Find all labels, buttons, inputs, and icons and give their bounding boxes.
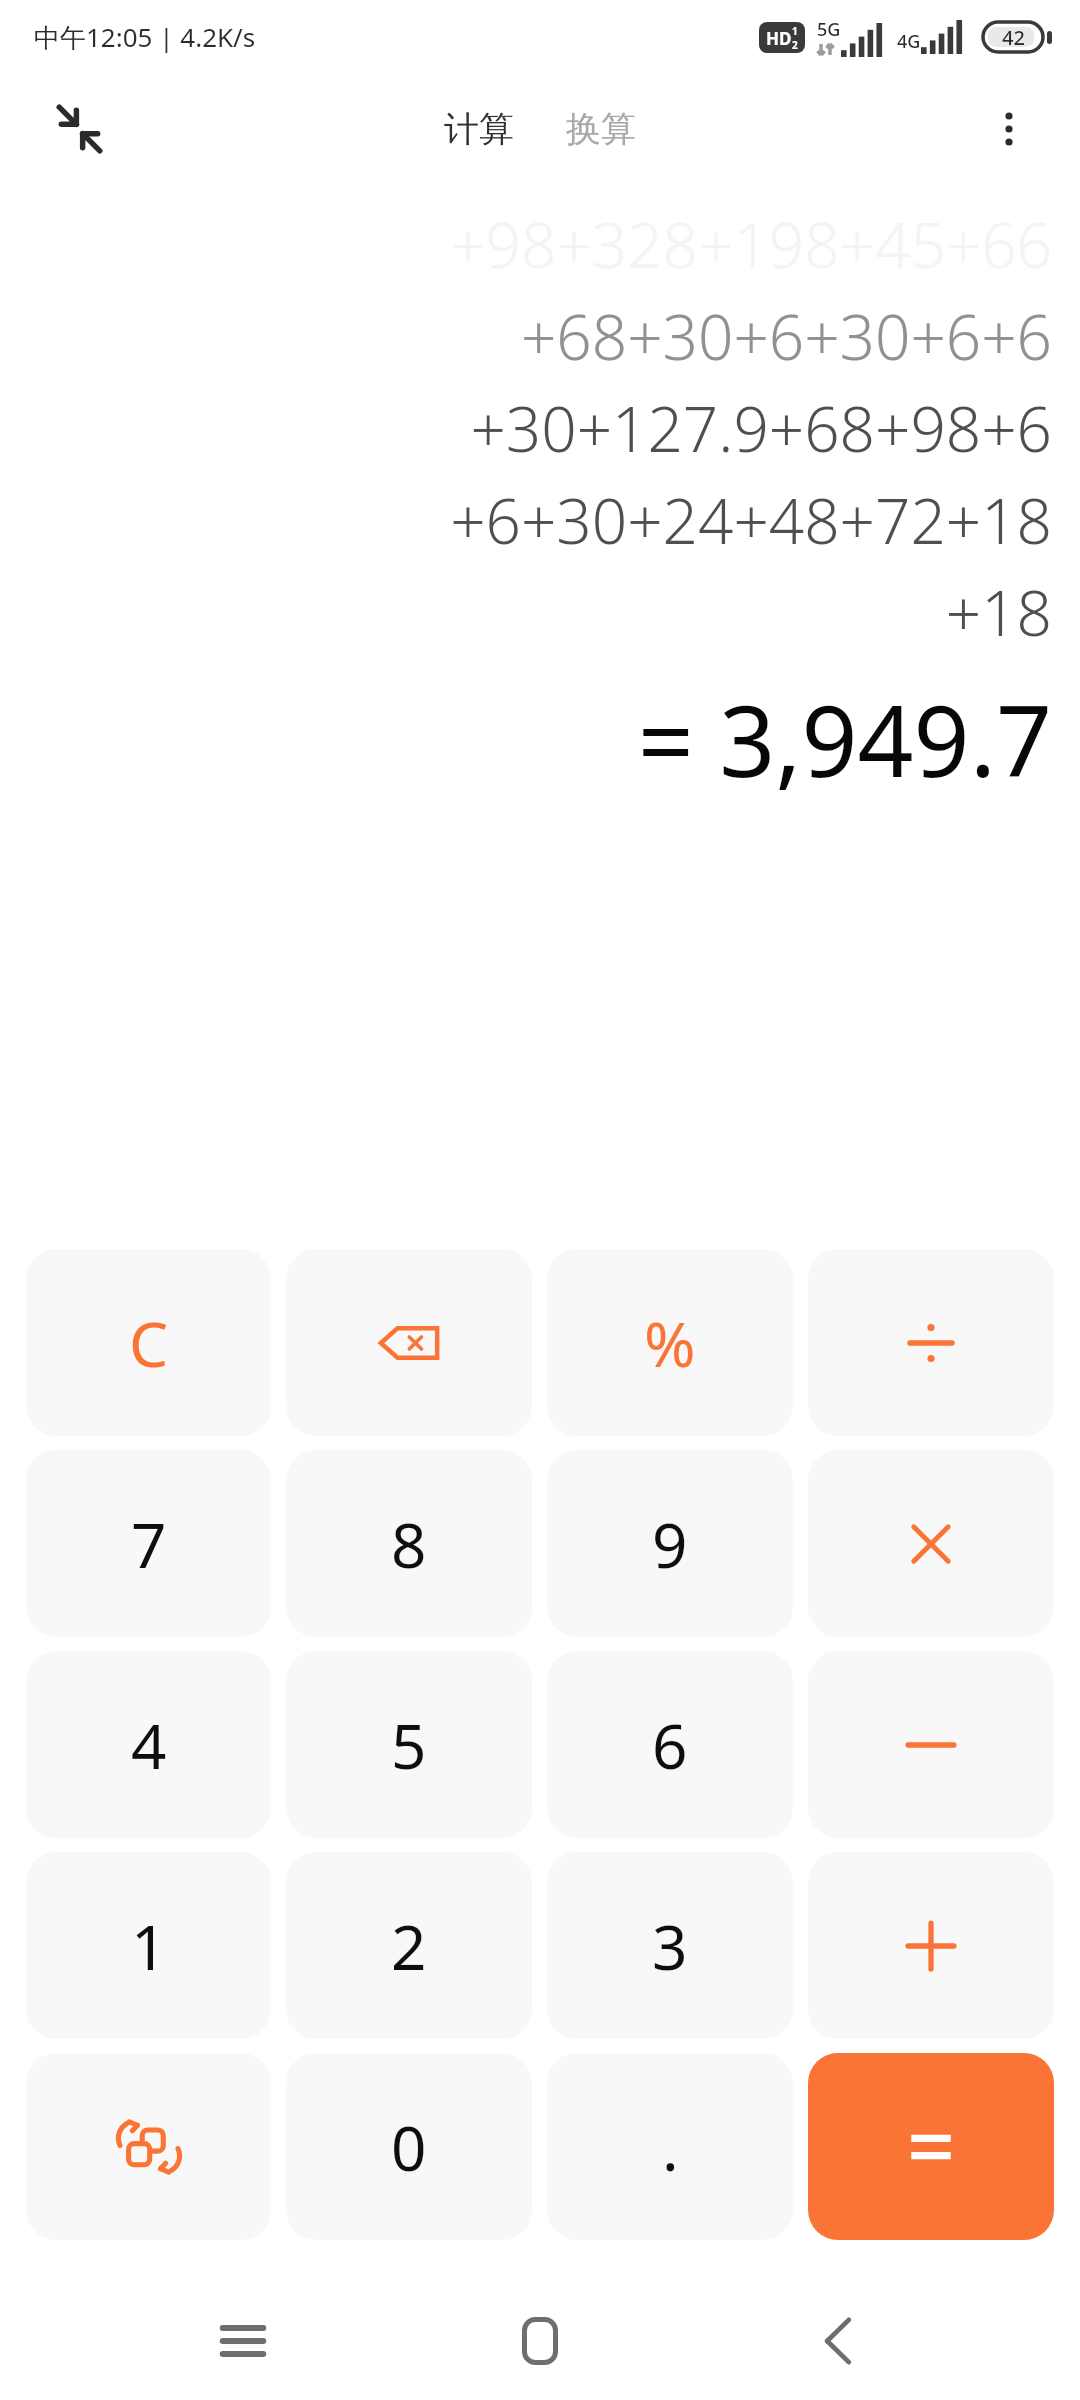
staticText: +68+30+6+30+6+6 — [520, 294, 1052, 378]
staticText: . — [662, 2105, 679, 2189]
staticText: 4G — [897, 29, 921, 54]
button[interactable]: 4 — [26, 1651, 271, 1838]
button[interactable]: . — [547, 2053, 793, 2240]
staticText: 6 — [652, 1703, 688, 1787]
button[interactable]: Recents — [188, 2286, 298, 2396]
button[interactable]: 2 — [286, 1852, 532, 2039]
button[interactable]: 换算 — [554, 97, 648, 161]
staticText: +18 — [945, 570, 1052, 654]
staticText: +30+127.9+68+98+6 — [470, 386, 1052, 470]
button[interactable]: Divide — [808, 1249, 1054, 1436]
button[interactable]: 1 — [26, 1852, 271, 2039]
staticText: 42 — [1002, 24, 1025, 51]
staticText: 5 — [391, 1703, 427, 1787]
staticText: 9 — [652, 1502, 688, 1586]
staticText: 3 — [652, 1904, 688, 1988]
button[interactable]: 8 — [286, 1450, 532, 1637]
button[interactable]: Collapse — [40, 90, 118, 168]
button[interactable]: 计算 — [432, 97, 526, 161]
button[interactable]: C — [26, 1249, 271, 1436]
staticText: +98+328+198+45+66 — [450, 202, 1052, 286]
staticText: 5G — [817, 17, 841, 42]
button[interactable]: 5 — [286, 1651, 532, 1838]
button[interactable]: Plus — [808, 1852, 1054, 2039]
staticText: 换算 — [566, 107, 636, 151]
staticText: 0 — [391, 2105, 427, 2189]
button[interactable]: 0 — [286, 2053, 532, 2240]
staticText: = 3,949.7 — [637, 672, 1052, 805]
button[interactable]: 9 — [547, 1450, 793, 1637]
button[interactable]: Equals — [808, 2053, 1054, 2240]
button[interactable]: Multiply — [808, 1450, 1054, 1637]
staticText: 计算 — [444, 107, 514, 151]
button[interactable]: More options — [970, 90, 1048, 168]
button[interactable]: % — [547, 1249, 793, 1436]
staticText: 2 — [792, 38, 798, 52]
staticText: % — [644, 1301, 696, 1385]
button[interactable]: Minus — [808, 1651, 1054, 1838]
button[interactable]: 6 — [547, 1651, 793, 1838]
staticText: 2 — [391, 1904, 427, 1988]
button[interactable]: Back — [783, 2286, 893, 2396]
staticText: 4 — [131, 1703, 167, 1787]
staticText: 1 — [792, 24, 798, 38]
staticText: 8 — [391, 1502, 427, 1586]
button[interactable]: 3 — [547, 1852, 793, 2039]
button[interactable]: Rotate screen — [26, 2053, 271, 2240]
staticText: 7 — [131, 1502, 167, 1586]
staticText: 1 — [131, 1904, 167, 1988]
button[interactable]: Backspace — [286, 1249, 532, 1436]
button[interactable]: Home — [485, 2286, 595, 2396]
staticText: 中午12:05 | 4.2K/s — [34, 19, 256, 55]
staticText: +6+30+24+48+72+18 — [450, 478, 1052, 562]
staticText: C — [129, 1301, 169, 1385]
button[interactable]: 7 — [26, 1450, 271, 1637]
staticText: HD — [766, 27, 792, 50]
